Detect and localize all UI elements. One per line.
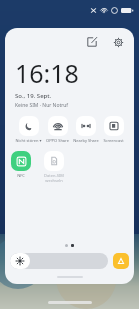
button[interactable]: NFC [11, 150, 31, 179]
staticText: Daten-SIM wechseln [44, 173, 64, 183]
button[interactable]: Nicht stören ▾ [15, 115, 42, 144]
staticText: So., 19. Sept. [15, 92, 52, 100]
staticText: Nicht stören ▾ [15, 138, 42, 143]
button[interactable]: OPPO Share [46, 115, 69, 144]
staticText: Screencast [103, 138, 124, 143]
staticText: 16:18 [15, 56, 79, 90]
staticText: OPPO Share [46, 138, 69, 143]
button[interactable]: Nearby Share [73, 115, 99, 144]
button[interactable]: Screencast [103, 115, 124, 144]
staticText: Nearby Share [73, 138, 99, 143]
button[interactable]: Settings [110, 34, 126, 50]
staticText: Keine SIM · Nur Notruf [15, 102, 69, 109]
button[interactable]: Auto brightness [113, 253, 129, 269]
staticText: NFC [17, 173, 25, 178]
button[interactable]: Daten-SIM wechseln [44, 150, 64, 184]
button[interactable]: Edit [84, 34, 100, 50]
button[interactable] [10, 253, 108, 269]
